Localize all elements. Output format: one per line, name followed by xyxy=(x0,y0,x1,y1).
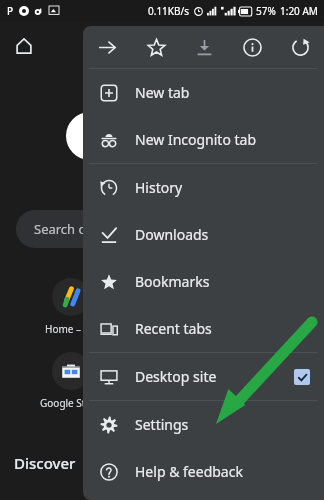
button[interactable]: Bookmark xyxy=(132,26,180,68)
staticText: Discover xyxy=(14,453,76,473)
button[interactable]: New tab xyxy=(83,69,324,116)
button[interactable]: Reload xyxy=(276,26,324,68)
button[interactable]: Page info xyxy=(228,26,276,68)
button[interactable]: Home xyxy=(12,34,36,58)
staticText: Desktop site xyxy=(135,367,217,386)
staticText: Recent tabs xyxy=(135,319,212,338)
button[interactable]: Google Store xyxy=(40,352,102,410)
staticText: Help & feedback xyxy=(135,462,243,481)
button[interactable]: Forward xyxy=(83,26,132,68)
staticText: 0.11KB/s xyxy=(148,4,190,18)
staticText: Settings xyxy=(135,415,189,434)
button[interactable]: History xyxy=(83,164,324,211)
staticText: P xyxy=(7,4,14,18)
button[interactable]: Recent tabs xyxy=(83,305,324,352)
button[interactable]: Home – Go xyxy=(40,278,102,336)
button[interactable]: Search or type web address xyxy=(16,210,256,248)
button[interactable]: Desktop site xyxy=(83,353,324,400)
button[interactable]: New Incognito tab xyxy=(83,116,324,163)
staticText: Google Store xyxy=(40,396,102,410)
staticText: Home – Go xyxy=(45,322,97,336)
button[interactable]: Bookmarks xyxy=(83,258,324,305)
button[interactable]: Settings xyxy=(83,401,324,448)
staticText: 1:20 AM xyxy=(280,4,318,18)
button[interactable]: Help & feedback xyxy=(83,448,324,495)
button[interactable]: Downloads xyxy=(83,211,324,258)
staticText: Bookmarks xyxy=(135,272,210,291)
staticText: New Incognito tab xyxy=(135,130,257,149)
staticText: Downloads xyxy=(135,225,209,244)
button[interactable]: Download page xyxy=(180,26,228,68)
staticText: New tab xyxy=(135,83,190,102)
staticText: History xyxy=(135,178,183,197)
staticText: 57% xyxy=(256,4,276,18)
staticText: Search or type web address xyxy=(34,220,203,238)
